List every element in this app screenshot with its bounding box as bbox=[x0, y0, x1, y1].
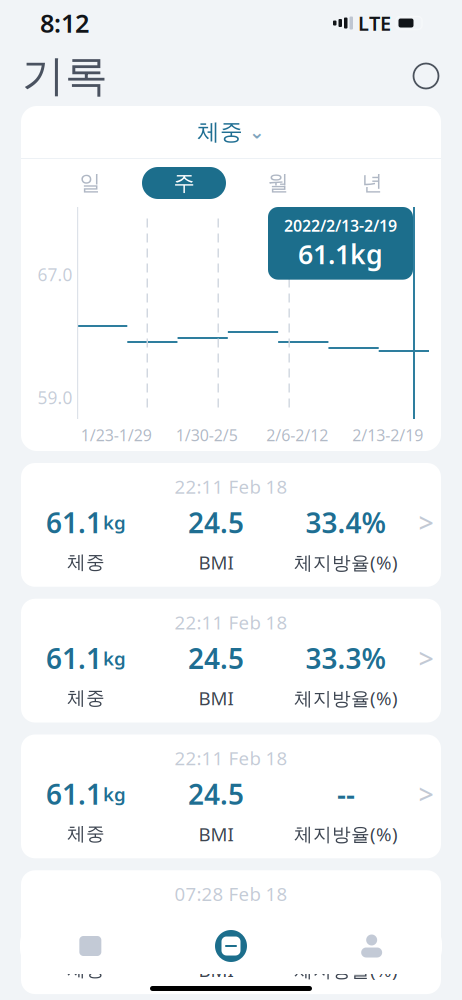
staticText: 61.1kg bbox=[298, 236, 383, 272]
staticText: 24.5 bbox=[188, 775, 244, 812]
staticText: 1/23-1/29 bbox=[81, 424, 152, 446]
staticText: 33.4% bbox=[305, 504, 386, 541]
button[interactable]: 주 bbox=[137, 167, 231, 199]
button[interactable]: History bbox=[404, 54, 448, 98]
staticText: 체중 bbox=[67, 551, 105, 574]
staticText: > bbox=[418, 640, 433, 676]
staticText: 2/6-2/12 bbox=[266, 424, 328, 446]
staticText: 24.5 bbox=[188, 504, 244, 541]
staticText: 체지방율(%) bbox=[294, 821, 398, 846]
staticText: kg bbox=[103, 510, 126, 535]
staticText: 주 bbox=[173, 170, 194, 196]
button[interactable]: 일 bbox=[43, 167, 137, 199]
staticText: 61.1 bbox=[46, 775, 102, 812]
staticText: 07:28 Feb 18 bbox=[174, 881, 287, 906]
button[interactable]: 월 bbox=[231, 167, 325, 199]
button[interactable]: 22:11 Feb 18 bbox=[21, 463, 441, 587]
staticText: 체중 bbox=[67, 687, 105, 710]
staticText: kg bbox=[103, 781, 126, 806]
button[interactable]: Records bbox=[161, 918, 301, 974]
staticText: 59.0 bbox=[37, 386, 72, 409]
button[interactable]: 07:28 Feb 18 bbox=[21, 870, 441, 994]
button[interactable]: 년 bbox=[325, 167, 419, 199]
staticText: 61.1 bbox=[46, 640, 102, 677]
staticText: 37.0% bbox=[305, 911, 386, 948]
staticText: 체지방율(%) bbox=[294, 957, 398, 982]
staticText: 24.5 bbox=[188, 640, 244, 677]
staticText: 체중 bbox=[197, 118, 243, 146]
staticText: ⌄ bbox=[249, 121, 265, 143]
staticText: 2022/2/13-2/19 bbox=[284, 215, 397, 236]
staticText: 24.5 bbox=[188, 911, 244, 948]
staticText: LTE bbox=[358, 10, 391, 36]
button[interactable]: 22:11 Feb 18 bbox=[21, 599, 441, 723]
staticText: 일 bbox=[79, 170, 100, 196]
button[interactable]: 체중 bbox=[21, 106, 441, 158]
staticText: 61.1 bbox=[46, 911, 102, 948]
staticText: 체지방율(%) bbox=[294, 550, 398, 575]
staticText: 22:11 Feb 18 bbox=[174, 745, 287, 770]
staticText: 33.3% bbox=[305, 640, 386, 677]
staticText: 22:11 Feb 18 bbox=[174, 610, 287, 635]
staticText: 체중 bbox=[67, 822, 105, 845]
button[interactable]: Home bbox=[20, 918, 161, 974]
button[interactable]: 22:11 Feb 18 bbox=[21, 734, 441, 858]
staticText: BMI bbox=[198, 550, 233, 575]
staticText: 22:11 Feb 18 bbox=[174, 474, 287, 499]
staticText: BMI bbox=[198, 821, 233, 846]
button[interactable]: Profile bbox=[301, 918, 442, 974]
staticText: 1/30-2/5 bbox=[176, 424, 238, 446]
staticText: -- bbox=[337, 775, 355, 812]
staticText: 8:12 bbox=[40, 6, 89, 40]
staticText: 체지방율(%) bbox=[294, 686, 398, 710]
staticText: 기록 bbox=[22, 50, 108, 102]
staticText: 년 bbox=[361, 170, 382, 196]
staticText: 월 bbox=[267, 170, 288, 196]
staticText: 61.1 bbox=[46, 504, 102, 541]
staticText: 2/13-2/19 bbox=[352, 424, 423, 446]
staticText: 67.0 bbox=[37, 263, 72, 286]
staticText: > bbox=[418, 505, 433, 540]
staticText: > bbox=[418, 776, 433, 812]
staticText: BMI bbox=[198, 957, 233, 982]
staticText: BMI bbox=[198, 686, 233, 710]
staticText: kg bbox=[103, 646, 126, 670]
staticText: 체중 bbox=[67, 958, 105, 981]
